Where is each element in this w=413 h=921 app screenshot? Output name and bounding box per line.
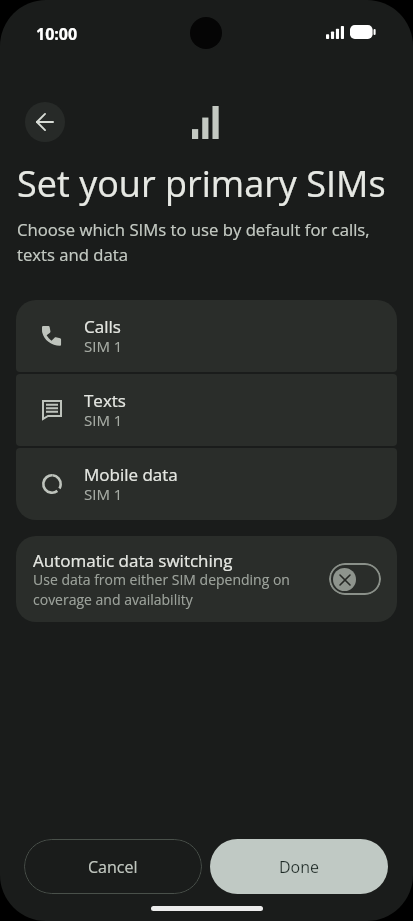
button[interactable]: Automatic data switching toggle [329,563,381,595]
staticText: Mobile data [84,463,178,486]
staticText: Use data from either SIM depending on co… [33,570,295,609]
button[interactable]: Mobile data [16,448,397,520]
button[interactable]: Back [25,102,65,142]
button[interactable]: Calls [16,300,397,372]
staticText: Calls [84,315,121,338]
button[interactable]: Automatic data switching [16,536,397,622]
staticText: Done [279,856,320,878]
button[interactable]: Cancel [24,839,202,894]
staticText: Cancel [88,856,138,878]
staticText: SIM 1 [84,484,123,504]
staticText: SIM 1 [84,336,123,356]
button[interactable]: Done [210,839,388,894]
staticText: SIM 1 [84,410,123,430]
staticText: 10:00 [36,23,78,45]
staticText: Set your primary SIMs [17,159,386,208]
staticText: Automatic data switching [33,549,233,572]
staticText: Choose which SIMs to use by default for … [17,218,389,266]
button[interactable]: Texts [16,374,397,446]
staticText: Texts [84,389,126,412]
